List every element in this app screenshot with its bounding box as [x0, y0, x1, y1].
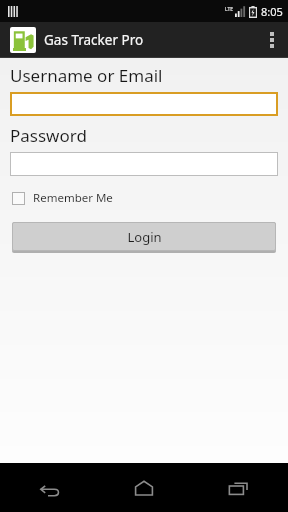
staticText: Gas Tracker Pro — [44, 31, 144, 49]
button[interactable]: Back — [26, 463, 74, 512]
staticText: Remember Me — [33, 190, 113, 206]
button[interactable]: Username or Email field — [10, 92, 278, 116]
staticText: Login — [127, 228, 162, 246]
button[interactable]: Password field — [10, 152, 278, 176]
button[interactable]: Remember Me — [12, 190, 113, 206]
staticText: 8:05 — [261, 4, 283, 19]
button[interactable]: Home — [120, 463, 168, 512]
staticText: Username or Email — [10, 64, 163, 87]
button[interactable]: Recent apps — [214, 463, 262, 512]
staticText: Password — [10, 124, 87, 147]
button[interactable]: More options — [256, 22, 288, 57]
staticText: LTE — [225, 6, 234, 13]
button[interactable]: Login — [12, 222, 276, 251]
